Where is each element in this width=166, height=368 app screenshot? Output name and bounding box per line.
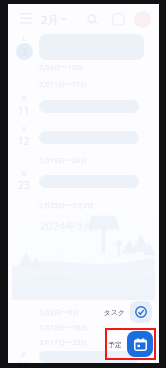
staticText: 2月18日〜24日 [39, 156, 88, 166]
staticText: 12 [18, 134, 30, 148]
other: 新しい予定を作成 [127, 331, 153, 357]
staticText: 2月4日〜10日 [39, 63, 84, 73]
staticText: 20 [18, 359, 30, 363]
staticText: 予定 [108, 340, 122, 349]
staticText: 3月3日〜9日 [39, 308, 80, 318]
staticText: 11 [18, 103, 30, 117]
button[interactable]: Search [82, 9, 102, 29]
staticText: 3月10日〜16日 [39, 323, 88, 333]
button[interactable]: 日 [12, 95, 153, 117]
staticText: タスク [103, 308, 125, 317]
staticText: 2月 [41, 12, 59, 27]
staticText: 金 [21, 170, 27, 177]
staticText: 月 [21, 126, 27, 133]
button[interactable]: 金 [12, 170, 153, 192]
staticText: 23 [18, 178, 30, 192]
button[interactable]: Menu [16, 9, 36, 29]
staticText: 3 [22, 46, 28, 58]
button[interactable]: 土 [12, 34, 153, 60]
button[interactable]: Today [108, 9, 128, 29]
button[interactable]: Account [134, 11, 151, 28]
staticText: 2月25日〜3月2日 [39, 201, 95, 211]
staticText: 水 [21, 351, 27, 358]
staticText: 土 [21, 35, 27, 42]
button[interactable]: タスク [103, 301, 152, 323]
staticText: 3月17日〜23日 [39, 338, 88, 348]
button[interactable]: 水 [12, 351, 153, 363]
staticText: 日 [21, 95, 27, 102]
staticText: 2月11日〜17日 [39, 80, 88, 90]
button[interactable]: 予定 [108, 331, 153, 357]
staticText: 2024年3月 [40, 218, 94, 233]
button[interactable]: 月 [12, 126, 153, 148]
